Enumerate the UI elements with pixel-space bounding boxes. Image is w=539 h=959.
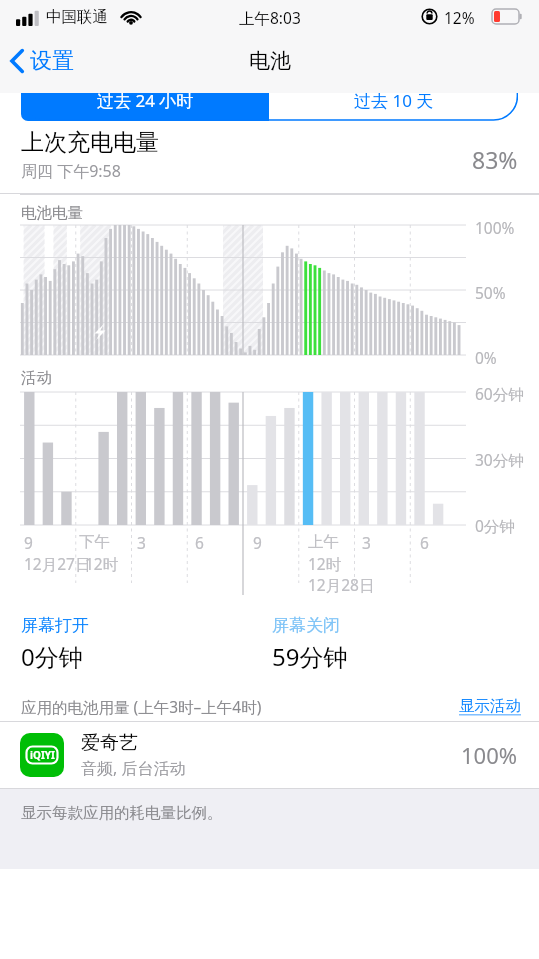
staticText: 0分钟 bbox=[21, 640, 83, 673]
button[interactable]: 过去 10 天 bbox=[269, 93, 518, 121]
staticText: 50% bbox=[475, 282, 506, 303]
staticText: 设置 bbox=[30, 47, 74, 75]
staticText: 3 bbox=[137, 532, 146, 553]
staticText: 上次充电电量 bbox=[21, 128, 159, 157]
staticText: 显示每款应用的耗电量比例。 bbox=[21, 803, 223, 823]
button[interactable]: 设置 bbox=[0, 43, 84, 79]
staticText: 过去 10 天 bbox=[354, 93, 434, 112]
staticText: 音频, 后台活动 bbox=[81, 757, 186, 779]
staticText: 59分钟 bbox=[272, 640, 348, 673]
staticText: 9 bbox=[24, 532, 33, 553]
button[interactable]: 过去 24 小时 bbox=[21, 93, 269, 121]
staticText: 12月27日 bbox=[24, 553, 91, 574]
staticText: iQIYI bbox=[30, 748, 55, 762]
staticText: 活动 bbox=[21, 368, 52, 388]
staticText: 30分钟 bbox=[475, 449, 524, 470]
staticText: 12时 bbox=[308, 553, 342, 574]
staticText: 下午 bbox=[79, 532, 110, 552]
staticText: 3 bbox=[362, 532, 371, 553]
staticText: 上午8:03 bbox=[239, 7, 301, 28]
button[interactable]: iQIYI bbox=[0, 722, 539, 788]
staticText: 显示活动 bbox=[459, 696, 521, 716]
staticText: 60分钟 bbox=[475, 383, 524, 404]
staticText: 过去 24 小时 bbox=[97, 93, 194, 112]
staticText: 应用的电池用量 (上午3时–上午4时) bbox=[21, 696, 262, 717]
staticText: 6 bbox=[420, 532, 429, 553]
staticText: 屏幕打开 bbox=[21, 615, 89, 636]
staticText: 上午 bbox=[308, 532, 339, 552]
staticText: 6 bbox=[195, 532, 204, 553]
staticText: 电池 bbox=[249, 48, 291, 74]
button[interactable]: 显示活动 bbox=[441, 688, 539, 716]
staticText: 电池电量 bbox=[21, 203, 83, 223]
staticText: 0分钟 bbox=[475, 515, 515, 536]
staticText: 屏幕关闭 bbox=[272, 615, 340, 636]
staticText: 12时 bbox=[85, 553, 119, 574]
staticText: 中国联通 bbox=[46, 7, 108, 27]
staticText: 爱奇艺 bbox=[81, 731, 138, 755]
staticText: 周四 下午9:58 bbox=[21, 160, 121, 182]
staticText: 0% bbox=[475, 347, 497, 368]
staticText: 9 bbox=[253, 532, 262, 553]
staticText: 100% bbox=[461, 740, 518, 770]
staticText: 83% bbox=[472, 144, 518, 175]
staticText: 12月28日 bbox=[308, 574, 375, 595]
staticText: 100% bbox=[475, 217, 515, 238]
staticText: 12% bbox=[444, 7, 475, 28]
